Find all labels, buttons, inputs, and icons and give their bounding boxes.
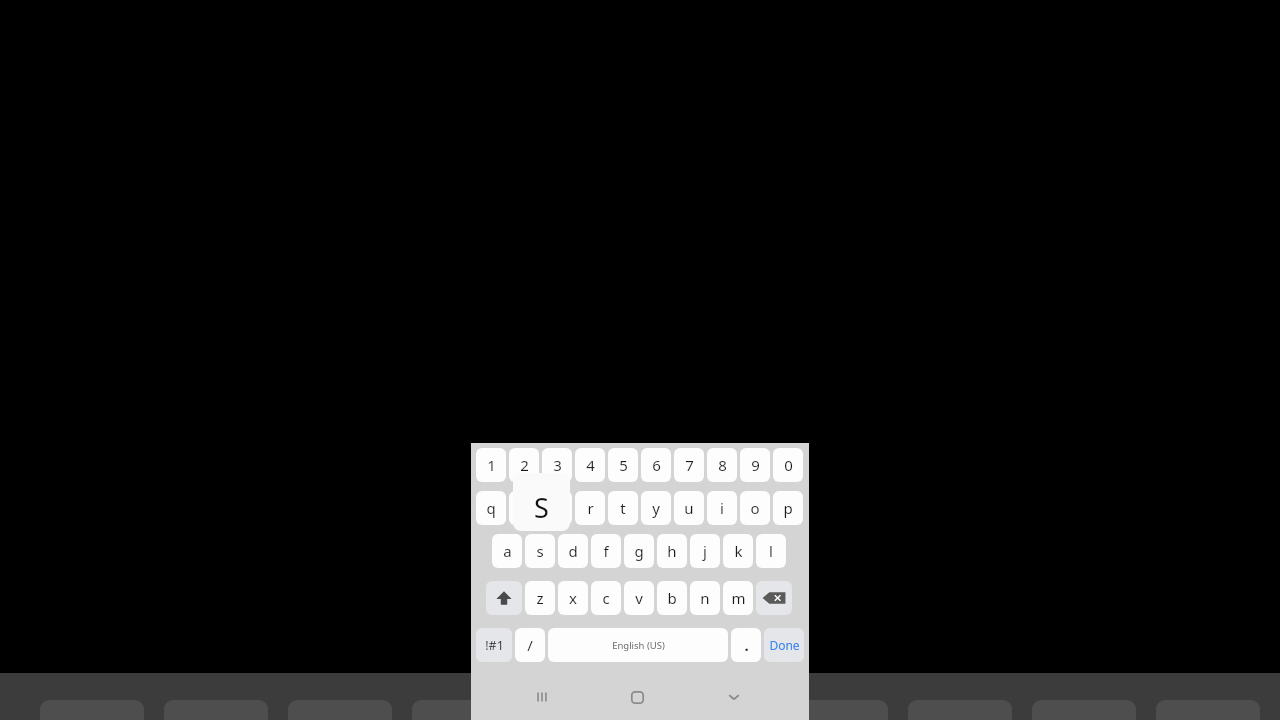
staticText: 5 (619, 455, 628, 475)
staticText: l (769, 541, 773, 561)
staticText: 9 (751, 455, 760, 475)
button[interactable]: Hide keyboard (721, 684, 747, 710)
staticText: 2 (520, 455, 529, 475)
staticText: 4 (586, 455, 595, 475)
staticText: 3 (553, 455, 562, 475)
staticText: v (635, 588, 643, 608)
button[interactable]: a (492, 534, 522, 568)
button[interactable]: y (641, 491, 671, 525)
staticText: 1 (487, 455, 496, 475)
staticText: English (US) (612, 639, 665, 652)
staticText: m (731, 588, 746, 608)
button[interactable]: l (756, 534, 786, 568)
staticText: k (734, 541, 743, 561)
staticText: 8 (718, 455, 727, 475)
button[interactable]: r (575, 491, 605, 525)
staticText: j (703, 541, 707, 561)
button[interactable]: 6 (641, 448, 671, 482)
button[interactable]: j (690, 534, 720, 568)
button[interactable]: h (657, 534, 687, 568)
button[interactable]: t (608, 491, 638, 525)
button[interactable]: p (773, 491, 803, 525)
button[interactable]: Recents (529, 684, 555, 710)
button[interactable]: f (591, 534, 621, 568)
staticText: z (536, 588, 544, 608)
staticText: b (667, 588, 677, 608)
button[interactable]: English (US) (548, 628, 728, 662)
staticText: u (684, 498, 694, 518)
staticText: x (569, 588, 577, 608)
button[interactable]: g (624, 534, 654, 568)
staticText: . (744, 635, 749, 655)
staticText: a (503, 541, 512, 561)
button[interactable]: i (707, 491, 737, 525)
staticText: / (527, 635, 533, 655)
staticText: p (783, 498, 793, 518)
button[interactable]: b (657, 581, 687, 615)
staticText: i (720, 498, 724, 518)
button[interactable]: 3 (542, 448, 572, 482)
staticText: n (700, 588, 710, 608)
staticText: S (534, 489, 549, 526)
staticText: 6 (652, 455, 661, 475)
button[interactable]: !#1 (476, 628, 512, 662)
button[interactable]: 7 (674, 448, 704, 482)
button[interactable]: Shift (486, 581, 522, 615)
staticText: s (536, 541, 544, 561)
staticText: f (603, 541, 609, 561)
button[interactable]: u (674, 491, 704, 525)
staticText: h (667, 541, 677, 561)
staticText: 0 (784, 455, 793, 475)
button[interactable]: 0 (773, 448, 803, 482)
staticText: t (620, 498, 626, 518)
button[interactable]: 5 (608, 448, 638, 482)
staticText: r (587, 498, 594, 518)
button[interactable]: Backspace (756, 581, 792, 615)
button[interactable]: s (525, 534, 555, 568)
button[interactable]: x (558, 581, 588, 615)
staticText: Done (769, 637, 800, 653)
button[interactable]: e (542, 491, 572, 525)
button[interactable]: k (723, 534, 753, 568)
staticText: g (634, 541, 644, 561)
button[interactable]: 2 (509, 448, 539, 482)
button[interactable]: v (624, 581, 654, 615)
button[interactable]: q (476, 491, 506, 525)
button[interactable]: . (731, 628, 761, 662)
button[interactable]: o (740, 491, 770, 525)
staticText: o (750, 498, 760, 518)
button[interactable]: c (591, 581, 621, 615)
button[interactable]: 1 (476, 448, 506, 482)
button[interactable]: m (723, 581, 753, 615)
button[interactable]: 8 (707, 448, 737, 482)
button[interactable]: d (558, 534, 588, 568)
staticText: !#1 (485, 637, 504, 654)
staticText: q (486, 498, 496, 518)
staticText: c (602, 588, 610, 608)
button[interactable]: / (515, 628, 545, 662)
button[interactable]: 4 (575, 448, 605, 482)
button[interactable]: n (690, 581, 720, 615)
staticText: y (652, 498, 660, 518)
button[interactable]: Home (624, 684, 650, 710)
button[interactable]: w (509, 491, 539, 525)
button[interactable]: Done (764, 628, 804, 662)
button[interactable]: 9 (740, 448, 770, 482)
staticText: d (568, 541, 578, 561)
button[interactable]: z (525, 581, 555, 615)
staticText: 7 (685, 455, 694, 475)
